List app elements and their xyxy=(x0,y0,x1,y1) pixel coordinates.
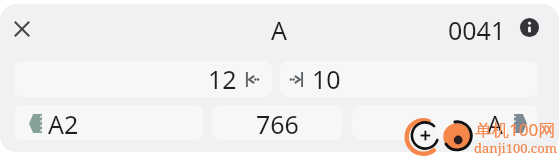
staticText: A xyxy=(487,107,503,140)
button[interactable]: Close xyxy=(6,13,38,45)
button[interactable]: 10 xyxy=(280,61,538,97)
staticText: A xyxy=(271,13,287,47)
button[interactable]: 766 xyxy=(212,105,342,140)
staticText: 10 xyxy=(312,62,341,96)
staticText: A2 xyxy=(48,107,79,140)
staticText: 单机100网 xyxy=(475,118,556,141)
button[interactable]: A2 xyxy=(14,105,203,140)
button[interactable]: 12 xyxy=(14,61,272,97)
button[interactable]: A xyxy=(352,105,538,140)
staticText: danji100.com xyxy=(474,139,557,157)
button[interactable]: 0041 xyxy=(448,13,506,47)
staticText: 766 xyxy=(256,107,299,140)
button[interactable]: Info xyxy=(513,11,545,43)
staticText: 12 xyxy=(208,62,237,96)
